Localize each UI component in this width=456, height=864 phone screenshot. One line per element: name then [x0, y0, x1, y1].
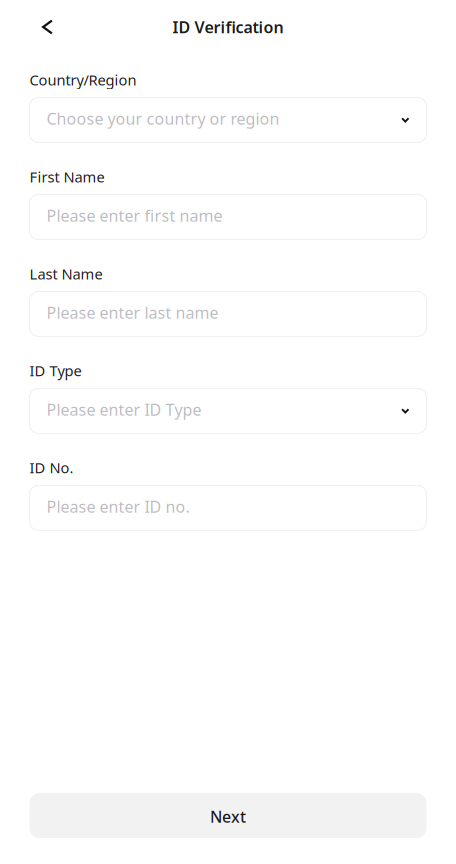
- button[interactable]: Next: [29, 793, 426, 838]
- staticText: Country/Region: [29, 70, 136, 89]
- staticText: Last Name: [29, 264, 102, 283]
- staticText: Please enter first name: [46, 205, 222, 226]
- button[interactable]: Please enter ID Type: [29, 388, 426, 433]
- button[interactable]: Choose your country or region: [29, 97, 426, 142]
- button[interactable]: Please enter last name: [29, 291, 426, 336]
- staticText: Please enter ID Type: [46, 399, 201, 420]
- staticText: ID No.: [29, 458, 73, 477]
- button[interactable]: Back: [0, 5, 95, 49]
- staticText: Choose your country or region: [46, 108, 279, 129]
- button[interactable]: Please enter first name: [29, 194, 426, 239]
- staticText: Please enter ID no.: [46, 496, 189, 517]
- staticText: First Name: [29, 167, 104, 186]
- staticText: ID Verification: [172, 16, 283, 38]
- staticText: Next: [210, 806, 246, 827]
- staticText: Please enter last name: [46, 302, 218, 323]
- staticText: ID Type: [29, 361, 81, 380]
- button[interactable]: Please enter ID no.: [29, 485, 426, 530]
